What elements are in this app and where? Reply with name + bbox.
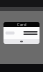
staticText: Card: [17, 22, 26, 27]
